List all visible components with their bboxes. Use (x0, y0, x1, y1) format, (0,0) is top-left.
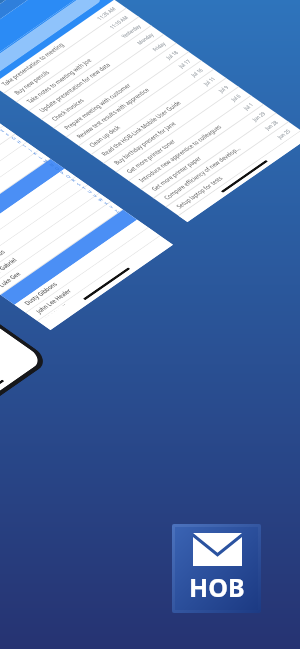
staticText: Check invoices (49, 90, 88, 129)
staticText: Luke Gee (0, 266, 25, 293)
staticText: Compare efficiency of new develop... (161, 129, 244, 218)
button[interactable]: Compare efficiency of new develop... (153, 87, 289, 233)
staticText: G (9, 135, 18, 142)
button[interactable]: Maria Santos (0, 159, 100, 305)
button[interactable]: Richard Gable (0, 108, 28, 254)
button[interactable]: Get more printer toner (115, 60, 252, 207)
staticText: John Lee Healer (33, 280, 75, 322)
staticText: Buy new pencils (11, 62, 53, 104)
staticText: S (75, 181, 83, 187)
staticText: Jul 1 (241, 100, 256, 113)
staticText: D (0, 123, 2, 130)
staticText: K (31, 150, 40, 157)
button[interactable]: Amy Gains (0, 116, 39, 262)
staticText: Get more printer paper (148, 144, 205, 203)
button[interactable]: Sam Garcia (0, 142, 77, 288)
staticText: R (69, 177, 78, 184)
staticText: I (21, 143, 29, 149)
staticText: L (36, 155, 45, 161)
staticText: HOB (189, 570, 245, 604)
staticText: Review test results with apprentice (74, 71, 153, 156)
button[interactable]: Prepare meeting with customer (53, 17, 190, 163)
staticText: Prepare meeting with customer (61, 68, 135, 146)
staticText: Vicki Hoffs (44, 297, 68, 323)
button[interactable]: Buy birthday present for Jane (103, 52, 239, 198)
button[interactable]: Update presentation for new data (28, 0, 165, 146)
staticText: Get more printer toner (123, 127, 180, 186)
staticText: E (0, 128, 7, 134)
staticText: Jun 28 (262, 117, 281, 134)
staticText: Y (107, 204, 116, 210)
staticText: Setup laptop for tests (173, 165, 226, 220)
staticText: Yesterday (119, 19, 144, 43)
staticText: Introduce new apprentice to colleagues (136, 105, 226, 202)
button[interactable]: Take notes to meeting with Joe (15, 0, 152, 137)
button[interactable]: Search notes (0, 0, 105, 101)
staticText: Update presentation for new data (36, 46, 114, 129)
staticText: V (91, 192, 100, 199)
staticText: Jul 18 (164, 47, 181, 63)
staticText: U (86, 189, 95, 195)
button[interactable]: Tim Faber (0, 91, 4, 237)
staticText: Jul 9 (216, 83, 231, 95)
staticText: J (26, 147, 34, 152)
staticText: H (15, 139, 24, 145)
staticText: Monday (134, 29, 156, 49)
button[interactable]: John Lee Healer (25, 201, 161, 347)
staticText: F (4, 132, 12, 138)
staticText: Buy birthday present for Jane (111, 107, 180, 180)
button[interactable]: Get more printer paper (140, 78, 277, 224)
staticText: O (53, 166, 62, 172)
staticText: N (47, 162, 56, 168)
staticText: Maria Santos (0, 243, 9, 278)
staticText: X (102, 201, 110, 206)
button[interactable]: Take presentation to meeting (0, 0, 127, 119)
staticText: 11:10 AM (107, 11, 131, 34)
staticText: Jul 6 (229, 91, 244, 104)
button[interactable]: Read the HOB-Link Mobile User Guide (90, 43, 227, 189)
button[interactable]: Peter Gabriel (0, 167, 112, 313)
staticText: Read the HOB-Link Mobile User Guide (98, 83, 185, 175)
staticText: Peter Gabriel (0, 251, 20, 287)
staticText: Q (64, 173, 73, 180)
button[interactable]: Review test results with apprentice (65, 25, 202, 172)
staticText: Jul 11 (201, 73, 219, 89)
staticText: Friday (150, 38, 169, 55)
button[interactable]: Introduce new apprentice to colleagues (128, 69, 264, 216)
button[interactable]: Vicki Hoffs (38, 209, 162, 349)
button[interactable]: Clean up desk (78, 34, 215, 181)
staticText: Jul 16 (189, 65, 206, 80)
button[interactable]: Luke Gee (0, 175, 123, 321)
button[interactable]: Linda Gaal (0, 99, 16, 246)
staticText: Take notes to meeting with Joe (24, 44, 95, 119)
staticText: Z (113, 208, 121, 214)
staticText: P (58, 169, 67, 176)
staticText: T (80, 185, 89, 191)
staticText: W (96, 196, 106, 203)
button[interactable]: Karl Garnet (0, 150, 88, 296)
staticText: Jul 17 (176, 56, 194, 71)
staticText: Take presentation to meeting (0, 28, 68, 101)
button[interactable]: HOB mail logo (175, 527, 258, 610)
button[interactable]: Setup laptop for tests (165, 95, 300, 242)
staticText: 11:35 AM (95, 2, 119, 25)
staticText: Jun 29 (250, 108, 268, 125)
button[interactable]: Dusty Gibbons (13, 193, 149, 339)
staticText: Jun 25 (275, 126, 293, 142)
button[interactable]: Buy new pencils (3, 0, 140, 128)
staticText: Dusty Gibbons (21, 274, 61, 314)
button[interactable]: Check invoices (40, 8, 177, 154)
button[interactable]: Juan Gallo (0, 124, 51, 270)
staticText: Clean up desk (86, 117, 124, 155)
staticText: M (41, 158, 51, 165)
